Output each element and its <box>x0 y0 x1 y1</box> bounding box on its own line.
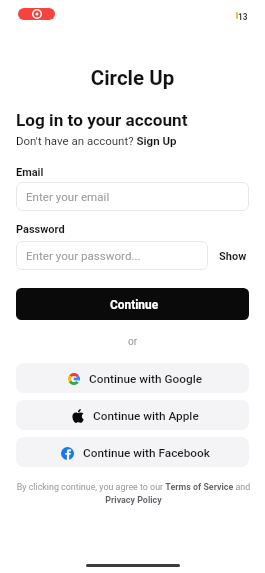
staticText: Enter your password... <box>26 249 141 263</box>
staticText: Continue <box>110 298 159 312</box>
button[interactable]: Enter your email <box>16 182 249 211</box>
button[interactable]: Enter your password... <box>16 241 208 270</box>
staticText: 13 <box>238 12 248 22</box>
staticText: Continue with Facebook <box>83 446 210 460</box>
staticText: Continue with Google <box>89 372 203 386</box>
button[interactable]: Continue with Facebook <box>16 437 249 467</box>
staticText: Enter your email <box>26 190 110 204</box>
button[interactable]: Continue <box>16 288 249 320</box>
staticText: Log in to your account <box>16 110 188 130</box>
staticText: Don't have an account? Sign Up <box>16 134 177 147</box>
staticText: Email <box>16 166 44 179</box>
button[interactable]: Show <box>209 243 249 268</box>
staticText: or <box>16 336 249 348</box>
staticText: Continue with Apple <box>93 409 199 423</box>
staticText: By clicking continue, you agree to our T… <box>15 482 252 505</box>
staticText: Password <box>16 223 65 236</box>
button[interactable]: Continue with Apple <box>16 400 249 430</box>
button[interactable]: Continue with Google <box>16 363 249 393</box>
staticText: Show <box>219 250 247 263</box>
button[interactable]: Screen recording <box>18 8 55 20</box>
staticText: Circle Up <box>0 66 265 90</box>
